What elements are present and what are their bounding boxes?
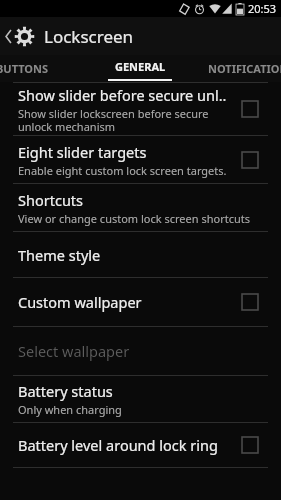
- button[interactable]: Toggle Eight slider targets: [235, 145, 265, 175]
- button[interactable]: Toggle Battery level around lock ring: [235, 430, 265, 460]
- staticText: Battery level around lock ring: [18, 435, 218, 455]
- button[interactable]: Eight slider targets: [0, 136, 281, 183]
- staticText: Lockscreen: [44, 25, 134, 48]
- button[interactable]: Toggle Custom wallpaper: [235, 287, 265, 317]
- staticText: GENERAL: [115, 59, 166, 74]
- button[interactable]: Battery status: [0, 376, 281, 422]
- button[interactable]: Navigate up: [0, 17, 281, 55]
- button[interactable]: Shortcuts: [0, 184, 281, 231]
- staticText: 20:53: [248, 1, 277, 16]
- staticText: Show slider before secure unl..: [18, 85, 227, 105]
- staticText: Show slider lockscreen before secure unl…: [18, 106, 209, 134]
- button[interactable]: GENERAL: [93, 55, 187, 82]
- staticText: Custom wallpaper: [18, 292, 142, 312]
- staticText: BUTTONS: [0, 61, 49, 76]
- staticText: View or change custom lock screen shortc…: [18, 211, 250, 226]
- button[interactable]: Battery level around lock ring: [0, 423, 281, 467]
- staticText: Eight slider targets: [18, 142, 147, 162]
- staticText: NOTIFICATIONS: [208, 61, 281, 76]
- staticText: Battery status: [18, 381, 113, 401]
- button[interactable]: Custom wallpaper: [0, 278, 281, 326]
- button[interactable]: NOTIFICATIONS: [187, 55, 281, 82]
- button[interactable]: Toggle Show slider before secure unl..: [235, 94, 265, 124]
- staticText: Shortcuts: [18, 190, 84, 210]
- button[interactable]: BUTTONS: [0, 55, 93, 82]
- button[interactable]: Theme style: [0, 232, 281, 277]
- staticText: Enable eight custom lock screen targets.: [18, 163, 227, 178]
- button[interactable]: Show slider before secure unl..: [0, 83, 281, 135]
- button[interactable]: Select wallpaper: [0, 327, 281, 375]
- staticText: Theme style: [18, 245, 101, 265]
- staticText: Select wallpaper: [18, 341, 130, 361]
- staticText: Only when charging: [18, 402, 122, 417]
